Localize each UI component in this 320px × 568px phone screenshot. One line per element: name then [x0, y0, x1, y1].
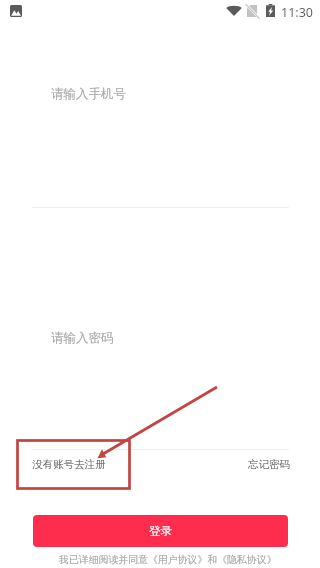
button[interactable]: 登录	[33, 515, 288, 547]
other: Wi-Fi connected	[226, 5, 242, 16]
staticText: 忘记密码	[248, 458, 290, 471]
button[interactable]: 请输入手机号	[32, 60, 289, 208]
other: Battery charging	[266, 4, 275, 17]
staticText: 没有账号去注册	[32, 458, 106, 471]
staticText: 11:30	[281, 4, 313, 21]
other: No SIM card	[247, 5, 257, 17]
button[interactable]: 没有账号去注册	[32, 458, 106, 471]
other: Screenshot notification	[10, 5, 22, 17]
button[interactable]: 我已详细阅读并同意《用户协议》和《隐私协议》	[59, 553, 277, 565]
staticText: 请输入手机号	[51, 86, 126, 102]
button[interactable]: 请输入密码	[32, 304, 289, 450]
staticText: 请输入密码	[51, 330, 114, 346]
staticText: 登录	[149, 524, 173, 539]
button[interactable]: 忘记密码	[248, 458, 290, 471]
staticText: 我已详细阅读并同意《用户协议》和《隐私协议》	[59, 553, 277, 565]
